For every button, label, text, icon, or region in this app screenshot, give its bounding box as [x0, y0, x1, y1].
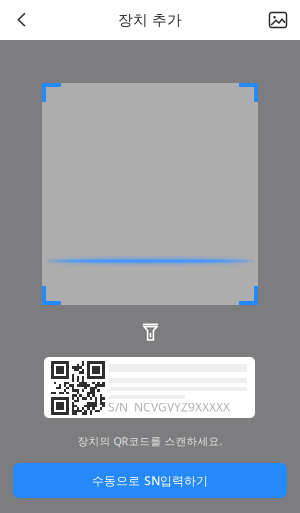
button[interactable]: 수동으로 SN입력하기	[13, 463, 287, 498]
button[interactable]: Photo library	[256, 0, 300, 40]
staticText: 수동으로 SN입력하기	[92, 472, 208, 488]
button[interactable]: Flashlight	[128, 312, 172, 352]
staticText: S/N NCVGVYZ9XXXXX	[108, 399, 230, 415]
button[interactable]: Back	[0, 0, 44, 40]
staticText: 장치 추가	[118, 11, 182, 29]
staticText: 장치의 QR코드를 스캔하세요.	[77, 434, 222, 448]
